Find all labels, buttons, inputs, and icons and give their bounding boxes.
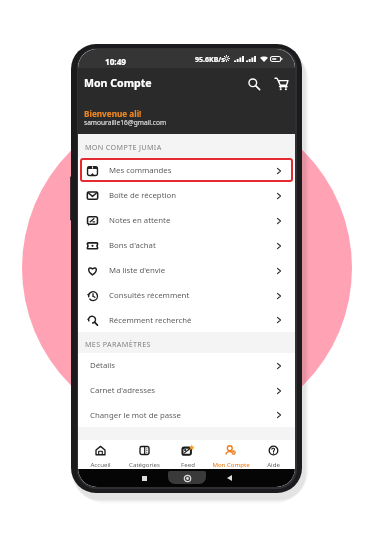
button[interactable]: Carnet d'adresses [78, 378, 295, 403]
button[interactable]: Accueil [78, 440, 122, 469]
button[interactable]: Back [223, 472, 235, 484]
button[interactable]: Mes commandes [78, 158, 295, 183]
staticText: Carnet d'adresses [90, 385, 156, 396]
staticText: MES PARAMÈTRES [85, 339, 151, 349]
staticText: Mes commandes [109, 165, 172, 176]
button[interactable]: Récemment recherché [78, 308, 295, 332]
staticText: MON COMPTE JUMIA [85, 142, 162, 152]
button[interactable]: Catégories [122, 440, 166, 469]
button[interactable]: Recent apps [138, 472, 150, 484]
staticText: Boîte de réception [109, 190, 177, 201]
button[interactable]: Consultés récemment [78, 283, 295, 308]
button[interactable]: Notes en attente [78, 208, 295, 233]
staticText: Feed [181, 460, 195, 468]
staticText: Détails [90, 360, 116, 371]
staticText: 10:49 [105, 56, 127, 67]
button[interactable]: Search [243, 73, 265, 95]
button[interactable]: Bons d'achat [78, 233, 295, 258]
staticText: Récemment recherché [109, 315, 192, 326]
button[interactable]: Détails [78, 353, 295, 378]
button[interactable]: Boîte de réception [78, 183, 295, 208]
staticText: Mon Compte [212, 460, 250, 468]
button[interactable]: Feed [166, 440, 209, 469]
button[interactable]: Home [181, 472, 193, 484]
button[interactable]: Shopping cart [275, 78, 288, 90]
button[interactable]: Ma liste d'envie [78, 258, 295, 283]
staticText: Ma liste d'envie [109, 265, 166, 276]
staticText: Changer le mot de passe [90, 410, 181, 421]
staticText: Catégories [129, 460, 160, 468]
staticText: samouraille16@gmail.com [84, 118, 167, 127]
staticText: Mon Compte [84, 76, 152, 90]
staticText: Accueil [90, 460, 111, 468]
staticText: Notes en attente [109, 215, 171, 226]
button[interactable]: Aide [252, 440, 295, 469]
staticText: Bons d'achat [109, 240, 156, 251]
staticText: Aide [267, 460, 280, 468]
button[interactable]: Changer le mot de passe [78, 403, 295, 427]
staticText: Bienvenue ali! [84, 108, 142, 119]
button[interactable]: Mon Compte [209, 440, 252, 469]
staticText: 95.6KB/s [195, 55, 225, 65]
staticText: Consultés récemment [109, 290, 190, 301]
